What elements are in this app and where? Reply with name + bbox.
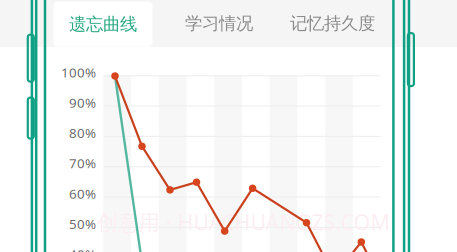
staticText: 学习情况 [185,13,253,34]
staticText: 100% [61,63,96,81]
staticText: 70% [69,154,96,172]
staticText: 60% [69,185,96,202]
button[interactable]: 学习情况 [171,1,267,46]
staticText: 80% [69,124,96,142]
button[interactable]: 记忆持久度 [277,1,387,46]
staticText: 90% [69,94,96,111]
staticText: 50% [69,215,96,233]
staticText: 创意用 · HUACHUANGZS.COM [96,208,389,236]
staticText: 记忆持久度 [290,13,375,34]
staticText: 遗忘曲线 [69,14,137,35]
button[interactable]: 遗忘曲线 [53,2,152,47]
staticText: 40% [69,245,96,252]
